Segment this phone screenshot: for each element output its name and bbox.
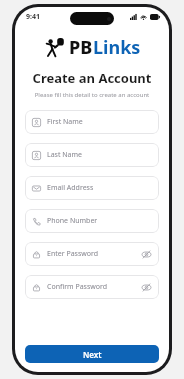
button[interactable]: Phone Number [25,209,159,233]
button[interactable]: Next [25,345,159,363]
staticText: Create an Account [15,69,169,87]
button[interactable]: Email Address [25,176,159,200]
button[interactable]: Show password [141,282,152,293]
staticText: Email Address [47,183,94,193]
staticText: Enter Password [47,249,99,259]
button[interactable]: Enter Password [25,242,159,266]
button[interactable]: Confirm Password [25,275,159,299]
staticText: Phone Number [47,216,98,226]
staticText: First Name [47,117,83,127]
staticText: Confirm Password [47,282,108,292]
staticText: Last Name [47,150,83,160]
staticText: Links [93,35,141,60]
staticText: 9:41 [26,12,40,22]
button[interactable]: First Name [25,110,159,134]
staticText: Next [83,349,102,360]
button[interactable]: Last Name [25,143,159,167]
button[interactable]: Show password [141,249,152,260]
staticText: Please fill this detail to create an acc… [15,91,169,99]
staticText: PB [69,35,93,60]
